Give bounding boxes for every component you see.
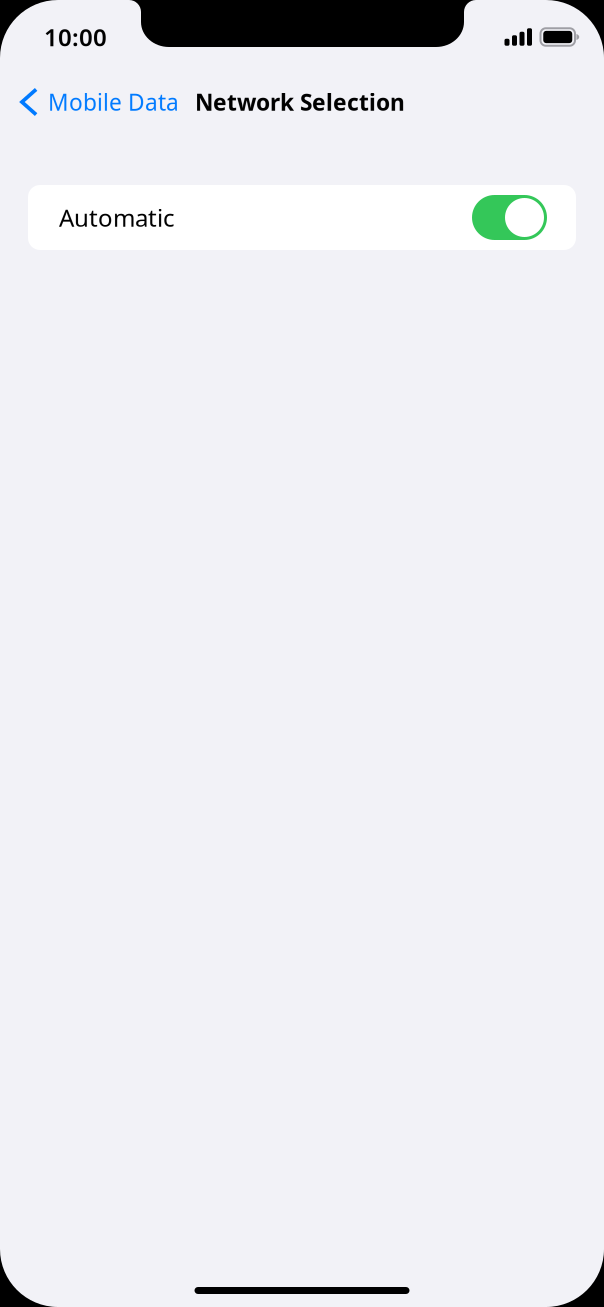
button[interactable]: Automatic network selection: [472, 195, 547, 240]
button[interactable]: Mobile Data: [20, 79, 179, 125]
staticText: Network Selection: [195, 87, 405, 117]
staticText: Mobile Data: [48, 87, 179, 117]
staticText: Automatic: [59, 202, 175, 233]
staticText: 10:00: [44, 21, 107, 53]
button[interactable]: Automatic: [28, 185, 576, 250]
